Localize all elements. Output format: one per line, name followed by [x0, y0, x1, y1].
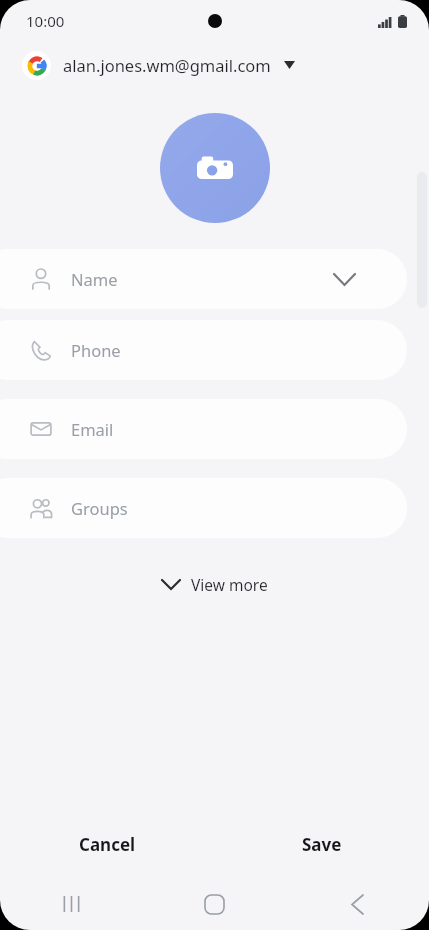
button[interactable]: alan.jones.wm@gmail.com	[0, 44, 429, 86]
staticText: Save	[302, 833, 342, 856]
button[interactable]: Recent apps	[0, 880, 143, 928]
staticText: Email	[71, 418, 355, 440]
button[interactable]: Groups	[0, 478, 407, 538]
staticText: Name	[71, 268, 334, 290]
button[interactable]: Home	[143, 880, 286, 928]
button[interactable]: Cancel	[0, 818, 214, 870]
staticText: View more	[191, 574, 268, 595]
button[interactable]: View more	[148, 566, 282, 603]
staticText: Cancel	[79, 833, 136, 856]
button[interactable]: Email	[0, 399, 407, 459]
staticText: 10:00	[26, 11, 65, 31]
button[interactable]: Name	[0, 249, 407, 309]
staticText: Groups	[71, 497, 355, 519]
button[interactable]: Add photo	[160, 113, 270, 223]
button[interactable]: Back	[286, 880, 429, 928]
staticText: alan.jones.wm@gmail.com	[63, 54, 271, 76]
button[interactable]: Save	[214, 818, 429, 870]
staticText: Phone	[71, 339, 355, 361]
button[interactable]: Phone	[0, 320, 407, 380]
